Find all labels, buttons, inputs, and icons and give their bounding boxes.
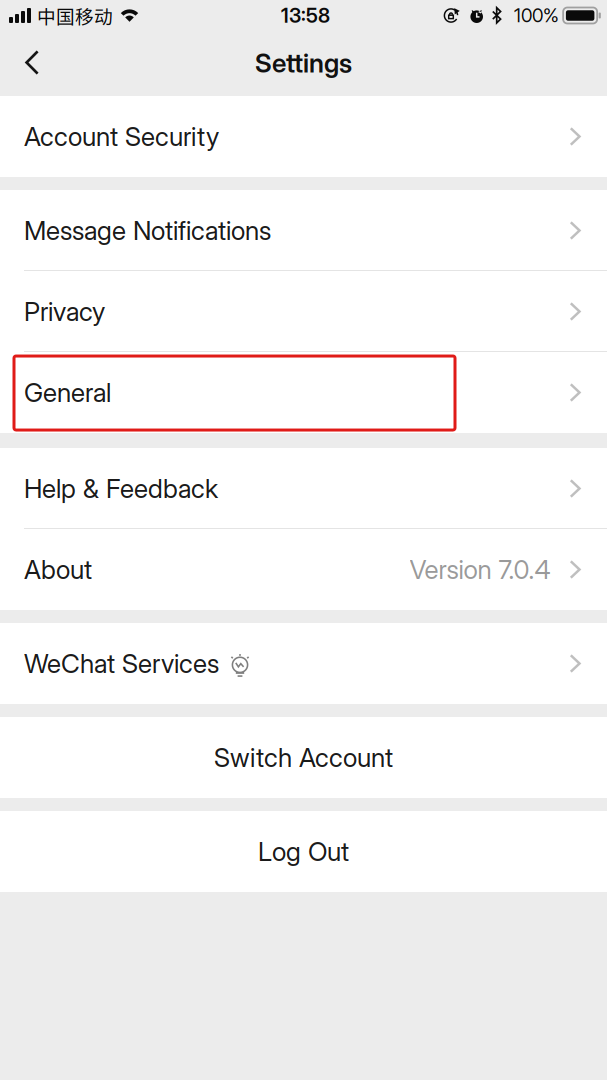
button[interactable]: Back (0, 34, 60, 90)
staticText: Privacy (24, 296, 105, 327)
button[interactable]: Help & Feedback (0, 448, 607, 529)
button[interactable]: Privacy (0, 271, 607, 352)
staticText: Switch Account (214, 742, 393, 773)
button[interactable]: General (0, 352, 607, 433)
button[interactable]: Message Notifications (0, 190, 607, 271)
staticText: Account Security (24, 121, 219, 152)
staticText: General (24, 377, 111, 408)
staticText: Version 7.0.4 (409, 554, 550, 585)
staticText: Settings (255, 47, 352, 79)
staticText: 中国移动 (37, 2, 113, 29)
staticText: 100% (514, 4, 559, 27)
staticText: WeChat Services (24, 648, 219, 679)
staticText: Message Notifications (24, 215, 271, 246)
button[interactable]: Switch Account (0, 717, 607, 798)
button[interactable]: Log Out (0, 811, 607, 892)
button[interactable]: Account Security (0, 96, 607, 177)
staticText: 13:58 (281, 3, 330, 28)
staticText: Log Out (258, 836, 349, 867)
button[interactable]: WeChat Services (0, 623, 607, 704)
staticText: About (24, 554, 92, 585)
button[interactable]: About (0, 529, 607, 610)
staticText: Help & Feedback (24, 473, 218, 504)
